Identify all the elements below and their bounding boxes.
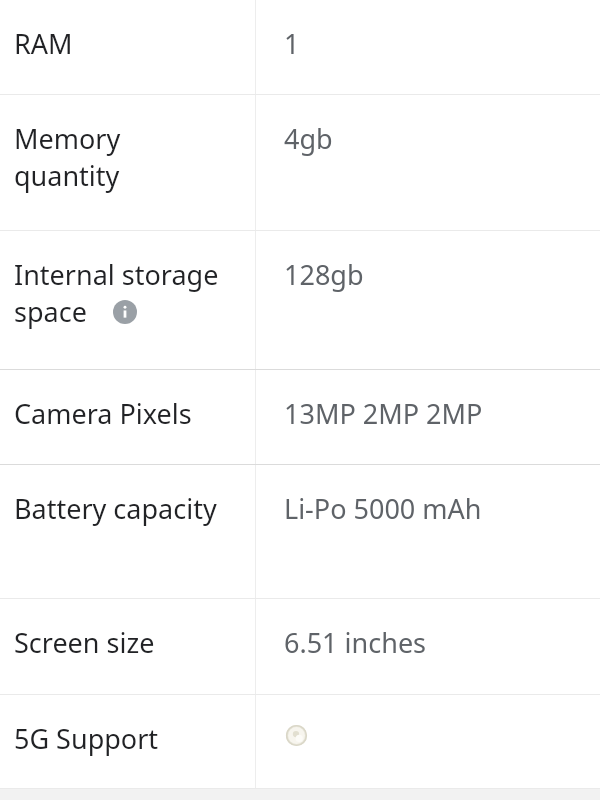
- staticText: Li-Po 5000 mAh: [284, 490, 482, 527]
- button[interactable]: Internal storage: [0, 231, 600, 369]
- staticText: quantity: [14, 157, 120, 194]
- staticText: 4gb: [284, 120, 333, 157]
- button[interactable]: RAM: [0, 0, 600, 94]
- staticText: Battery capacity: [14, 490, 217, 527]
- other: More information about internal storage …: [113, 300, 137, 324]
- staticText: 1: [284, 25, 300, 62]
- staticText: Internal storage: [14, 256, 219, 293]
- staticText: Screen size: [14, 624, 155, 661]
- button[interactable]: Battery capacity: [0, 465, 600, 598]
- staticText: space: [14, 293, 87, 330]
- staticText: 13MP 2MP 2MP: [284, 395, 483, 432]
- button[interactable]: Memory: [0, 95, 600, 230]
- button[interactable]: Camera Pixels: [0, 370, 600, 464]
- staticText: Camera Pixels: [14, 395, 192, 432]
- button[interactable]: 5G Support: [0, 695, 600, 788]
- staticText: 128gb: [284, 256, 364, 293]
- staticText: Memory: [14, 120, 121, 157]
- staticText: 6.51 inches: [284, 624, 427, 661]
- other: 5G support indicator: [286, 725, 307, 746]
- staticText: RAM: [14, 25, 73, 62]
- button[interactable]: Screen size: [0, 599, 600, 694]
- staticText: 5G Support: [14, 720, 159, 757]
